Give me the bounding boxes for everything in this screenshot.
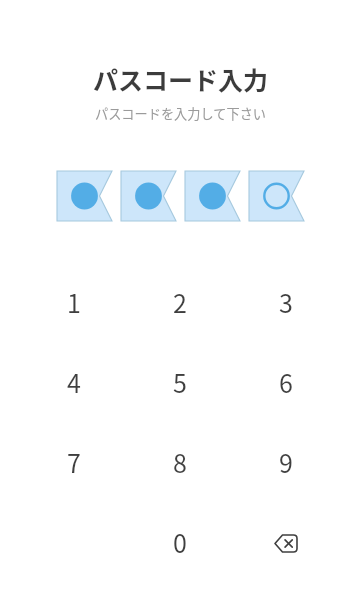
button[interactable]: 5: [127, 342, 233, 422]
button[interactable]: 1: [21, 262, 127, 342]
staticText: 4: [67, 364, 81, 400]
button[interactable]: 0: [127, 502, 233, 582]
button[interactable]: 7: [21, 422, 127, 502]
staticText: 9: [279, 444, 293, 480]
staticText: 7: [67, 444, 81, 480]
staticText: 3: [279, 284, 293, 320]
staticText: 0: [173, 524, 187, 560]
button[interactable]: 4: [21, 342, 127, 422]
button[interactable]: 2: [127, 262, 233, 342]
button[interactable]: Backspace: [233, 502, 339, 582]
button[interactable]: 8: [127, 422, 233, 502]
staticText: 5: [173, 364, 187, 400]
staticText: 2: [173, 284, 187, 320]
staticText: 1: [67, 284, 81, 320]
staticText: 8: [173, 444, 187, 480]
staticText: パスコードを入力して下さい: [95, 104, 267, 123]
staticText: パスコード入力: [93, 61, 269, 97]
button[interactable]: 9: [233, 422, 339, 502]
button[interactable]: 6: [233, 342, 339, 422]
button[interactable]: 3: [233, 262, 339, 342]
staticText: 6: [279, 364, 293, 400]
